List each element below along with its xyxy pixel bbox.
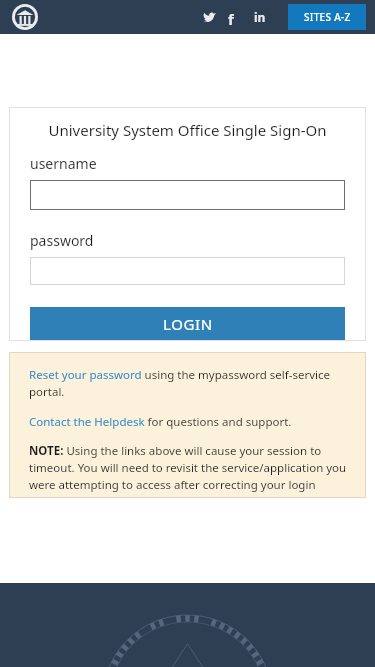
staticText: username <box>30 154 97 173</box>
button[interactable]: SITES A-Z <box>288 4 366 30</box>
button[interactable]: password field <box>30 257 345 285</box>
staticText: SITES A-Z <box>304 10 351 24</box>
staticText: University System Office Single Sign-On <box>30 120 345 140</box>
button[interactable]: username field <box>30 180 345 210</box>
button[interactable]: Contact the Helpdesk for questions and s… <box>29 414 348 430</box>
button[interactable]: LOGIN <box>30 307 345 341</box>
button[interactable]: Reset your password using the mypassword… <box>29 367 348 400</box>
button[interactable]: LinkedIn <box>251 8 269 26</box>
staticText: NOTE: Using the links above will cause y… <box>29 443 348 498</box>
staticText: LOGIN <box>163 314 213 334</box>
button[interactable]: University home <box>12 4 38 30</box>
staticText: f <box>228 9 234 25</box>
staticText: password <box>30 231 94 250</box>
button[interactable]: Twitter <box>200 8 218 26</box>
staticText: in <box>254 9 266 25</box>
button[interactable]: Facebook <box>223 9 239 25</box>
